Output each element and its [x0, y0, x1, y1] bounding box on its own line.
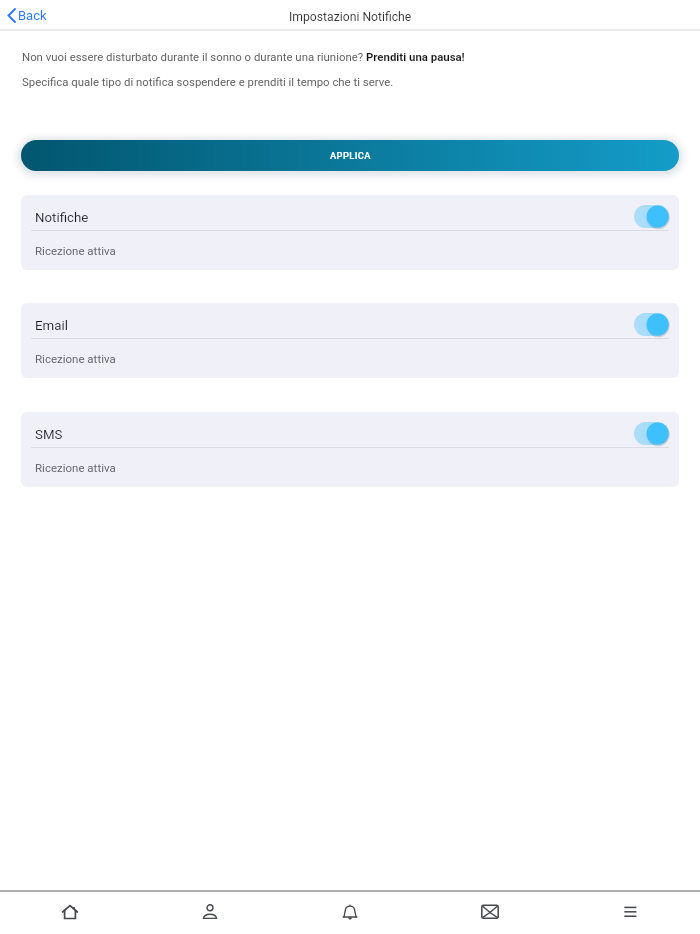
staticText: Ricezione attiva — [35, 244, 116, 257]
button[interactable]: Notifiche — [21, 195, 679, 270]
button[interactable]: Home — [0, 892, 140, 934]
button[interactable]: Menu — [560, 892, 700, 934]
staticText: APPLICA — [330, 150, 371, 161]
staticText: Back — [18, 8, 47, 23]
button[interactable]: APPLICA — [21, 140, 679, 171]
staticText: Email — [35, 318, 68, 334]
button[interactable]: Toggle notifications — [634, 313, 669, 336]
button[interactable]: Back — [4, 4, 50, 27]
button[interactable]: Email — [21, 303, 679, 378]
button[interactable]: Toggle notifications — [634, 205, 669, 228]
staticText: SMS — [35, 427, 63, 443]
button[interactable]: Notifications — [280, 892, 420, 934]
staticText: Specifica quale tipo di notifica sospend… — [22, 75, 394, 88]
staticText: Ricezione attiva — [35, 352, 116, 365]
button[interactable]: Toggle notifications — [634, 422, 669, 445]
button[interactable]: Mail — [420, 892, 560, 934]
staticText: Ricezione attiva — [35, 461, 116, 474]
button[interactable]: Profile — [140, 892, 280, 934]
staticText: Non vuoi essere disturbato durante il so… — [22, 50, 465, 63]
staticText: Notifiche — [35, 210, 89, 226]
staticText: Impostazioni Notifiche — [289, 10, 412, 24]
button[interactable]: SMS — [21, 412, 679, 487]
